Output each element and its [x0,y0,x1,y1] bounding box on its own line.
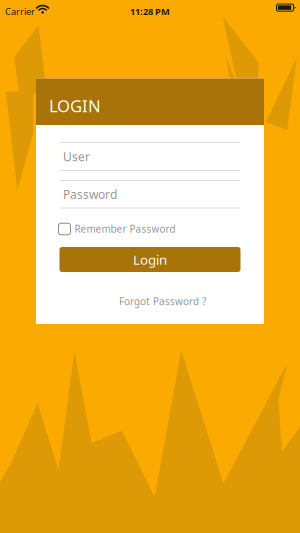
staticText: Login [133,250,167,269]
staticText: Password [63,186,117,202]
staticText: Remember Password [74,222,175,236]
staticText: Forgot Password ? [119,295,206,308]
staticText: 11:28 PM [130,5,170,18]
button[interactable]: Remember Password [58,222,208,236]
staticText: User [63,148,90,165]
button[interactable]: Forgot Password ? [119,295,209,307]
staticText: Carrier [5,5,35,18]
staticText: LOGIN [49,94,101,117]
button[interactable]: Login [59,247,240,272]
